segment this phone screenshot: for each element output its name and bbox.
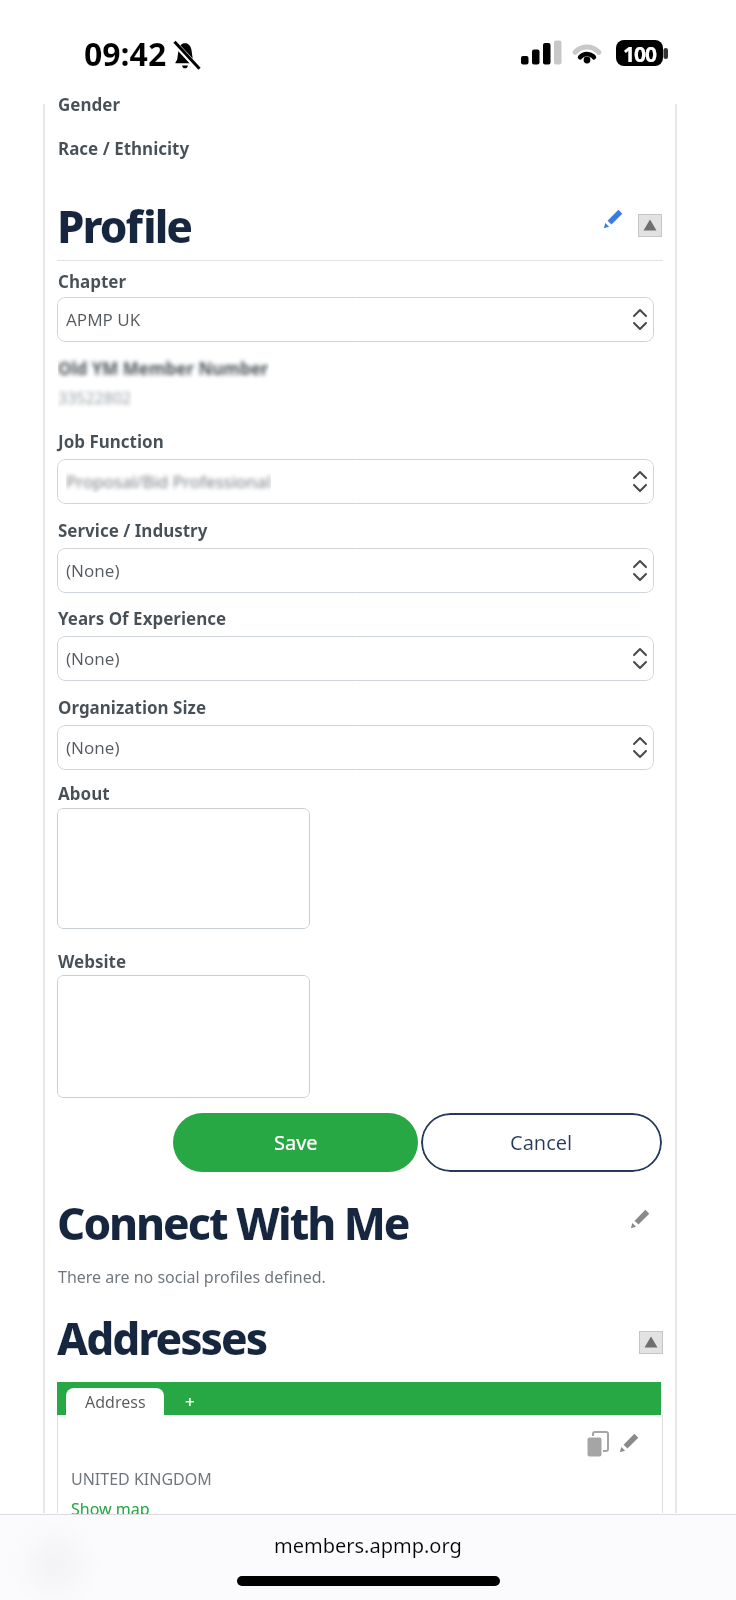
button[interactable]: (None) — [57, 725, 654, 770]
staticText: Job Function — [58, 430, 164, 453]
staticText: Years Of Experience — [58, 607, 227, 630]
button[interactable]: (None) — [57, 548, 654, 593]
staticText: About — [58, 782, 110, 805]
button[interactable] — [639, 1331, 663, 1354]
staticText: + — [185, 1390, 195, 1413]
staticText: 100 — [623, 40, 657, 66]
staticText: Chapter — [58, 270, 127, 293]
button[interactable] — [57, 808, 310, 929]
staticText: Cancel — [510, 1129, 573, 1156]
button[interactable] — [57, 975, 310, 1098]
staticText: Website — [58, 950, 127, 973]
staticText: Save — [274, 1129, 318, 1156]
staticText: Service / Industry — [58, 519, 208, 542]
staticText: UNITED KINGDOM — [71, 1468, 212, 1490]
button[interactable] — [619, 1432, 640, 1453]
staticText: Organization Size — [58, 696, 207, 719]
staticText: 09:42 — [84, 32, 167, 76]
staticText: There are no social profiles defined. — [58, 1266, 326, 1288]
staticText: Profile — [57, 196, 191, 256]
staticText: (None) — [66, 559, 120, 582]
staticText: Connect With Me — [57, 1193, 409, 1253]
button[interactable]: Save — [173, 1113, 418, 1172]
button[interactable] — [630, 1208, 651, 1229]
button[interactable]: Proposal/Bid Professional — [57, 459, 654, 504]
staticText: 33522802 — [58, 387, 132, 409]
staticText: Address — [85, 1391, 146, 1413]
staticText: Proposal/Bid Professional — [66, 470, 271, 493]
button[interactable] — [638, 214, 662, 237]
staticText: Gender — [58, 93, 120, 116]
staticText: Addresses — [57, 1308, 267, 1368]
button[interactable]: Cancel — [421, 1113, 662, 1172]
staticText: members.apmp.org — [274, 1532, 462, 1559]
staticText: (None) — [66, 647, 120, 670]
staticText: (None) — [66, 736, 120, 759]
staticText: Race / Ethnicity — [58, 137, 190, 160]
button[interactable]: + — [170, 1388, 210, 1415]
staticText: Show map — [71, 1498, 150, 1520]
button[interactable]: APMP UK — [57, 297, 654, 342]
button[interactable] — [603, 208, 624, 229]
button[interactable]: members.apmp.org — [0, 1520, 736, 1570]
button[interactable] — [586, 1431, 610, 1458]
staticText: APMP UK — [66, 308, 141, 331]
button[interactable]: Address — [66, 1388, 164, 1415]
button[interactable]: (None) — [57, 636, 654, 681]
staticText: Old YM Member Number — [58, 357, 269, 380]
